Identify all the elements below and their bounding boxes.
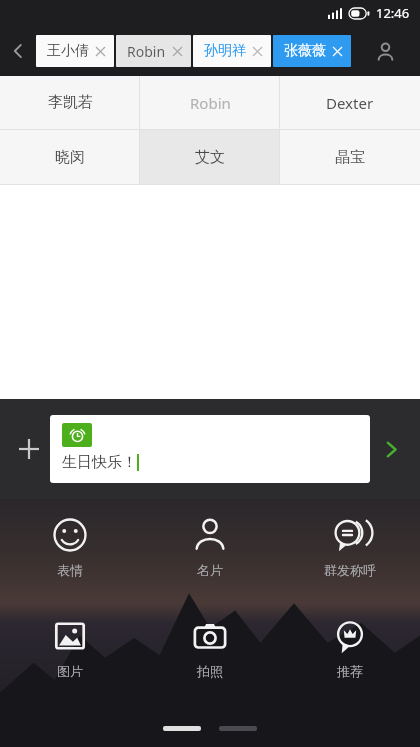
- button[interactable]: 艾文: [140, 130, 280, 184]
- staticText: 推荐: [337, 663, 363, 679]
- staticText: 孙明祥: [204, 42, 246, 60]
- staticText: 晓闵: [55, 148, 85, 167]
- button[interactable]: 孙明祥: [193, 35, 271, 67]
- button[interactable]: Send: [370, 428, 412, 470]
- button[interactable]: 张薇薇: [273, 35, 351, 67]
- staticText: 名片: [197, 562, 223, 578]
- button[interactable]: Contacts: [351, 26, 420, 76]
- button[interactable]: 拍照: [140, 614, 280, 683]
- button[interactable]: Back: [0, 26, 36, 76]
- staticText: 群发称呼: [324, 562, 376, 578]
- button[interactable]: 推荐: [280, 614, 420, 683]
- button[interactable]: 晓闵: [0, 130, 140, 184]
- staticText: 晶宝: [335, 148, 365, 167]
- button[interactable]: 生日快乐！: [50, 415, 370, 483]
- staticText: 王小倩: [47, 42, 89, 60]
- button[interactable]: 李凯若: [0, 76, 140, 129]
- button[interactable]: 王小倩: [36, 35, 114, 67]
- staticText: 图片: [57, 663, 83, 679]
- staticText: 表情: [57, 562, 83, 578]
- staticText: Dexter: [326, 93, 374, 113]
- button[interactable]: 群发称呼: [280, 513, 420, 582]
- button[interactable]: 名片: [140, 513, 280, 582]
- button[interactable]: Robin: [140, 76, 280, 129]
- staticText: 艾文: [195, 148, 225, 167]
- button[interactable]: 表情: [0, 513, 140, 582]
- staticText: 拍照: [197, 663, 223, 679]
- staticText: 张薇薇: [284, 42, 326, 60]
- staticText: 生日快乐！: [62, 453, 137, 472]
- button[interactable]: 图片: [0, 614, 140, 683]
- button[interactable]: Robin: [116, 35, 191, 67]
- staticText: Robin: [127, 42, 166, 61]
- button[interactable]: Add: [8, 428, 50, 470]
- button[interactable]: 晶宝: [280, 130, 420, 184]
- staticText: 李凯若: [48, 93, 93, 112]
- staticText: Robin: [190, 93, 231, 113]
- staticText: 12:46: [376, 4, 410, 22]
- button[interactable]: Dexter: [280, 76, 420, 129]
